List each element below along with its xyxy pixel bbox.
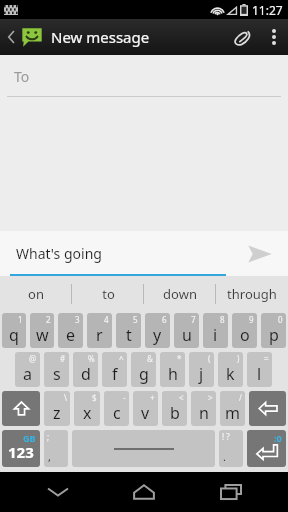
staticText: 11:27 <box>252 2 283 18</box>
button[interactable]: 6 <box>145 313 170 348</box>
staticText: > <box>208 392 213 403</box>
button[interactable]: ; <box>44 430 68 467</box>
button[interactable]: to <box>72 276 144 311</box>
button[interactable]: 1 <box>2 313 26 348</box>
staticText: e <box>66 324 76 346</box>
button[interactable]: @ <box>15 352 40 387</box>
button[interactable]: Recent apps <box>202 472 260 512</box>
staticText: down <box>163 285 197 303</box>
button[interactable]: = <box>247 352 272 387</box>
button[interactable]: 9 <box>232 313 257 348</box>
staticText: ^ <box>119 353 124 364</box>
button[interactable]: Back <box>3 23 19 51</box>
staticText: c <box>113 402 121 424</box>
button[interactable]: Enter <box>247 430 286 467</box>
staticText: - <box>123 392 126 403</box>
staticText: New message <box>51 27 150 47</box>
button[interactable]: Backspace <box>249 391 286 426</box>
staticText: @ <box>29 353 37 364</box>
staticText: n <box>199 402 209 424</box>
staticText: x <box>83 402 92 424</box>
button[interactable]: > <box>191 391 216 426</box>
button[interactable]: GB <box>2 430 40 467</box>
button[interactable]: ! ? <box>219 430 243 467</box>
staticText: on <box>28 285 44 303</box>
staticText: * <box>177 353 182 364</box>
button[interactable]: Attach <box>224 19 260 55</box>
staticText: h <box>168 363 178 385</box>
button[interactable]: + <box>133 391 158 426</box>
button[interactable]: \ <box>44 391 70 426</box>
button[interactable]: < <box>162 391 187 426</box>
staticText: & <box>147 353 153 364</box>
button[interactable]: What's going <box>0 231 232 276</box>
staticText: g <box>139 363 149 385</box>
staticText: # <box>60 353 66 364</box>
button[interactable]: % <box>73 352 98 387</box>
staticText: m <box>225 402 240 424</box>
button[interactable]: 0 <box>261 313 286 348</box>
staticText: + <box>150 392 155 403</box>
staticText: 8 <box>220 314 225 325</box>
staticText: v <box>141 402 150 424</box>
button[interactable]: ) <box>218 352 243 387</box>
staticText: What's going <box>16 244 102 263</box>
staticText: k <box>226 363 235 385</box>
button[interactable]: 4 <box>87 313 112 348</box>
button[interactable]: 2 <box>30 313 54 348</box>
staticText: i <box>213 324 218 346</box>
button[interactable]: Send <box>232 231 288 276</box>
staticText: = <box>264 353 269 364</box>
staticText: 5 <box>133 314 138 325</box>
staticText: 123 <box>8 442 34 462</box>
button[interactable]: - <box>104 391 129 426</box>
button[interactable]: 3 <box>58 313 83 348</box>
button[interactable]: 7 <box>174 313 199 348</box>
button[interactable]: # <box>44 352 69 387</box>
staticText: To <box>14 67 30 86</box>
button[interactable]: * <box>160 352 185 387</box>
button[interactable]: ^ <box>102 352 127 387</box>
button[interactable]: More options <box>260 19 288 55</box>
staticText: p <box>269 324 279 346</box>
button[interactable]: 5 <box>116 313 141 348</box>
staticText: y <box>153 324 162 346</box>
staticText: a <box>23 363 32 385</box>
staticText: \ <box>64 392 67 403</box>
staticText: 2 <box>46 314 51 325</box>
staticText: $ <box>92 392 97 403</box>
staticText: w <box>36 324 49 346</box>
staticText: GB <box>23 432 36 444</box>
staticText: 0 <box>278 314 283 325</box>
staticText: 6 <box>162 314 167 325</box>
button[interactable]: on <box>0 276 72 311</box>
staticText: , <box>48 449 51 464</box>
staticText: ; <box>47 431 50 442</box>
button[interactable]: / <box>220 391 245 426</box>
staticText: :0 <box>274 432 282 444</box>
staticText: 3 <box>75 314 80 325</box>
staticText: b <box>170 402 180 424</box>
staticText: 4 <box>104 314 109 325</box>
staticText: f <box>112 363 118 385</box>
button[interactable]: through <box>216 276 288 311</box>
staticText: z <box>53 402 61 424</box>
staticText: o <box>240 324 250 346</box>
button[interactable]: 8 <box>203 313 228 348</box>
button[interactable]: Back <box>29 472 87 512</box>
staticText: d <box>81 363 91 385</box>
staticText: 1 <box>18 314 23 325</box>
button[interactable]: Space <box>72 430 215 467</box>
staticText: l <box>257 363 262 385</box>
staticText: . <box>223 449 226 464</box>
button[interactable]: $ <box>74 391 100 426</box>
button[interactable]: ( <box>189 352 214 387</box>
button[interactable] <box>2 391 40 426</box>
staticText: 9 <box>249 314 254 325</box>
staticText: to <box>102 285 115 303</box>
staticText: t <box>126 324 132 346</box>
button[interactable]: Home <box>115 472 173 512</box>
button[interactable]: down <box>144 276 216 311</box>
button[interactable]: & <box>131 352 156 387</box>
staticText: % <box>88 353 95 364</box>
